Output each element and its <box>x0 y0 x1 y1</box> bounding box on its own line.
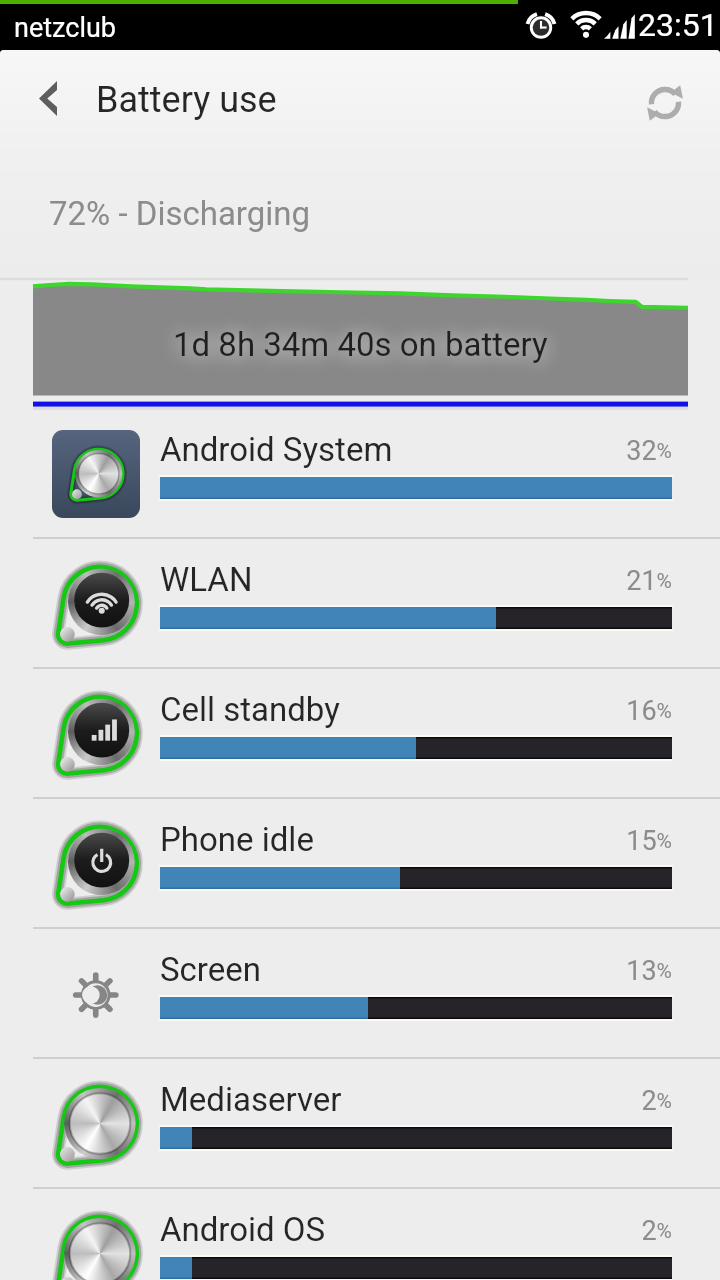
staticText: Mediaserver <box>160 1080 342 1119</box>
staticText: Screen <box>160 950 261 989</box>
button[interactable]: Cell standby <box>0 669 720 797</box>
staticText: 1d 8h 34m 40s on battery <box>173 325 548 364</box>
staticText: 15% <box>0 825 672 857</box>
staticText: 72% - Discharging <box>49 194 311 233</box>
button[interactable]: WLAN <box>0 539 720 667</box>
button[interactable]: Android OS <box>0 1189 720 1280</box>
staticText: netzclub <box>14 12 116 44</box>
staticText: Cell standby <box>160 690 340 729</box>
staticText: 2% <box>0 1215 672 1247</box>
staticText: 2% <box>0 1085 672 1117</box>
button[interactable]: Mediaserver <box>0 1059 720 1187</box>
button[interactable]: Back <box>0 50 96 155</box>
staticText: 23:51 <box>638 6 718 44</box>
staticText: 13% <box>0 955 672 987</box>
button[interactable]: Screen <box>0 929 720 1057</box>
staticText: 32% <box>0 435 672 467</box>
staticText: 16% <box>0 695 672 727</box>
staticText: Battery use <box>96 79 277 121</box>
staticText: WLAN <box>160 560 253 599</box>
staticText: Android OS <box>160 1210 326 1249</box>
button[interactable]: Phone idle <box>0 799 720 927</box>
staticText: Android System <box>160 430 393 469</box>
staticText: Phone idle <box>160 820 314 859</box>
button[interactable]: Refresh <box>610 50 720 155</box>
button[interactable]: Android System <box>0 409 720 537</box>
staticText: 21% <box>0 565 672 597</box>
